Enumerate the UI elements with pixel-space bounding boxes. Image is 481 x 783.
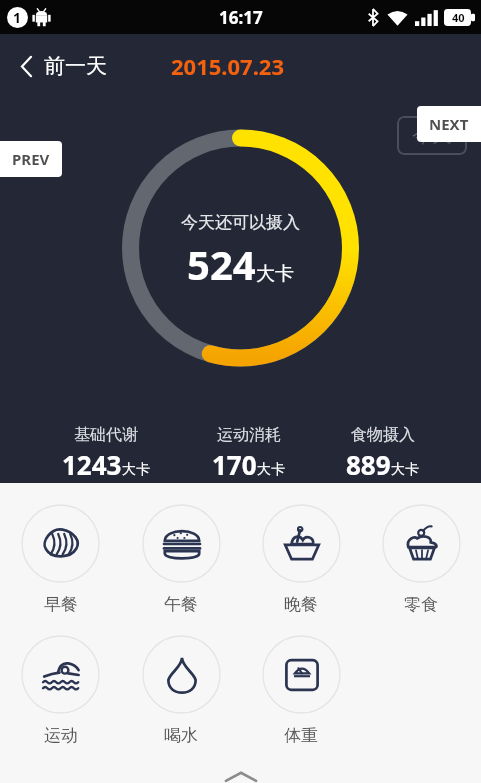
staticText: 16:17	[219, 6, 263, 29]
other: Dinner	[282, 524, 322, 564]
button[interactable]: Snack	[361, 501, 481, 618]
button[interactable]: Exercise	[0, 632, 121, 749]
button[interactable]: 基础代谢	[62, 425, 150, 482]
staticText: 大卡	[257, 461, 285, 479]
staticText: 今天还可以摄入	[181, 212, 300, 233]
staticText: 大卡	[256, 262, 294, 286]
button[interactable]: 前一天	[0, 43, 121, 89]
button[interactable]: Weight	[241, 632, 361, 749]
other: Weight	[282, 655, 322, 695]
staticText: 晚餐	[284, 594, 318, 615]
staticText: 午餐	[164, 594, 198, 615]
other: Snack	[402, 524, 442, 564]
staticText: 大卡	[122, 461, 150, 479]
staticText: 前一天	[44, 53, 107, 79]
staticText: 基础代谢	[74, 425, 138, 445]
button[interactable]: 今天	[397, 116, 467, 155]
staticText: 1	[13, 8, 22, 27]
button[interactable]: 食物摄入	[346, 425, 419, 482]
staticText: NEXT	[429, 114, 469, 134]
other: Lunch	[162, 524, 202, 564]
staticText: PREV	[12, 149, 50, 169]
button[interactable]: 运动消耗	[212, 425, 285, 482]
staticText: 喝水	[164, 725, 198, 746]
other: Water	[162, 655, 202, 695]
staticText: 1243	[62, 447, 122, 482]
button[interactable]: PREV	[0, 141, 62, 177]
staticText: 524	[187, 237, 256, 291]
staticText: 体重	[284, 725, 318, 746]
button[interactable]: 2015.07.23	[171, 43, 285, 89]
staticText: 889	[346, 447, 391, 482]
staticText: 40	[452, 10, 465, 25]
other: Breakfast	[41, 524, 81, 564]
button[interactable]: Water	[121, 632, 241, 749]
staticText: 食物摄入	[351, 425, 415, 445]
other: Exercise	[41, 655, 81, 695]
button[interactable]: Breakfast	[0, 501, 121, 618]
staticText: 运动消耗	[217, 425, 281, 445]
button[interactable]: Dinner	[241, 501, 361, 618]
staticText: 170	[212, 447, 257, 482]
other: Expand	[223, 768, 259, 782]
staticText: 今天	[412, 123, 452, 148]
staticText: 零食	[404, 594, 438, 615]
button[interactable]: NEXT	[417, 106, 481, 142]
button[interactable]: Lunch	[121, 501, 241, 618]
staticText: 大卡	[391, 461, 419, 479]
staticText: 早餐	[44, 594, 78, 615]
staticText: 运动	[44, 725, 78, 746]
